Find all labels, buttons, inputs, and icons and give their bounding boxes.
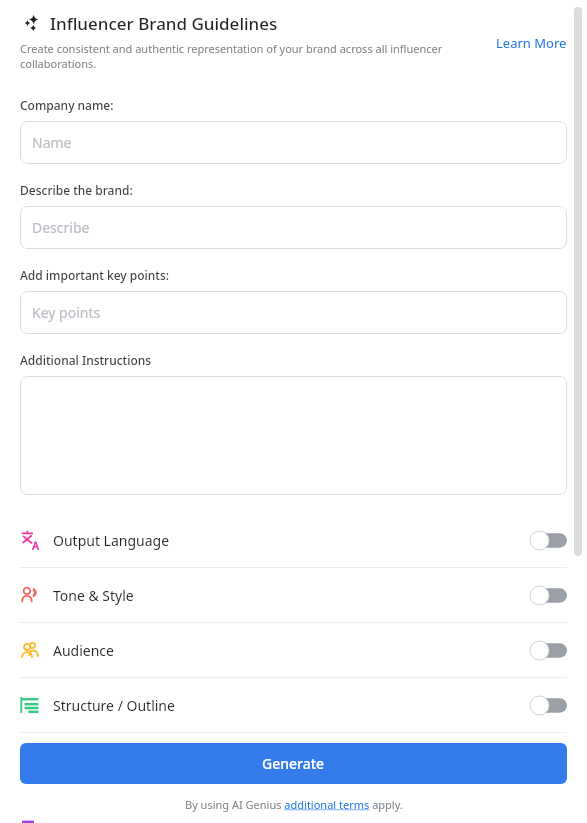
staticText: Describe the brand: — [20, 182, 133, 198]
button[interactable]: Examples — [20, 820, 567, 823]
staticText: Company name: — [20, 97, 114, 113]
button[interactable]: Toggle Tone & Style — [530, 586, 567, 605]
button[interactable]: Name — [20, 121, 567, 164]
button[interactable]: Tone & Style — [0, 568, 587, 622]
button[interactable]: Toggle Audience — [530, 641, 567, 660]
button[interactable]: Structure / Outline — [0, 678, 587, 732]
staticText: Tone & Style — [53, 586, 530, 605]
staticText: Generate — [262, 754, 325, 773]
button[interactable]: Audience — [0, 623, 587, 677]
staticText: Create consistent and authentic represen… — [20, 41, 463, 71]
staticText: Structure / Outline — [53, 696, 530, 715]
staticText: By using AI Genius additional terms appl… — [185, 797, 403, 812]
staticText: Additional Instructions — [20, 352, 152, 368]
button[interactable]: Generate — [20, 743, 567, 784]
button[interactable]: Output Language — [0, 513, 587, 567]
staticText: Output Language — [53, 531, 530, 550]
button[interactable] — [20, 376, 567, 495]
button[interactable]: Describe — [20, 206, 567, 249]
staticText: Key points — [32, 303, 101, 322]
button[interactable]: Toggle Output Language — [530, 531, 567, 550]
staticText: Name — [32, 133, 72, 152]
button[interactable]: Toggle Structure / Outline — [530, 696, 567, 715]
button[interactable]: Key points — [20, 291, 567, 334]
staticText: Influencer Brand Guidelines — [50, 12, 278, 35]
button[interactable]: Learn More — [496, 34, 567, 52]
staticText: Add important key points: — [20, 267, 170, 283]
staticText: Learn More — [496, 34, 567, 52]
staticText: Describe — [32, 218, 90, 237]
staticText: Audience — [53, 641, 530, 660]
